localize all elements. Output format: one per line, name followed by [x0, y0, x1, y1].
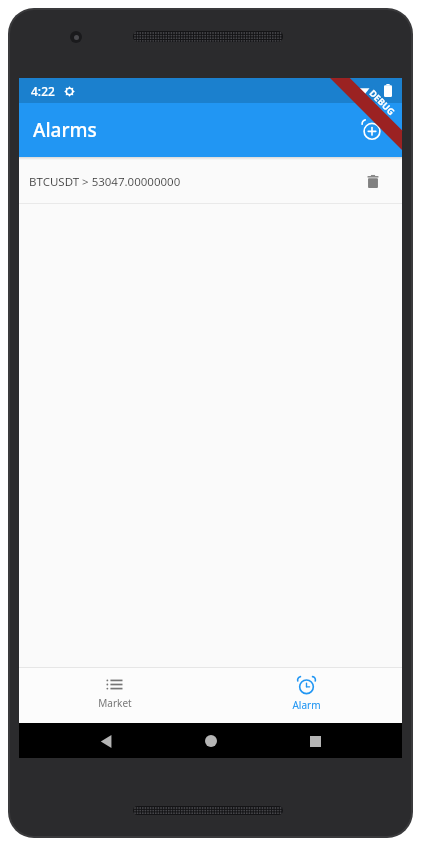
staticText: Alarms: [33, 117, 97, 143]
staticText: DEBUG: [367, 87, 398, 117]
staticText: 4:22: [31, 83, 55, 99]
button[interactable]: Alarm: [210, 668, 402, 723]
button[interactable]: Home: [194, 724, 228, 758]
button[interactable]: Recent apps: [298, 724, 332, 758]
staticText: BTCUSDT > 53047.00000000: [29, 174, 181, 190]
button[interactable]: BTCUSDT > 53047.00000000: [19, 160, 402, 203]
button[interactable]: Add alarm: [352, 110, 392, 150]
button[interactable]: Delete alarm: [358, 167, 388, 197]
button[interactable]: Back: [89, 724, 123, 758]
button[interactable]: Market: [19, 668, 210, 723]
staticText: Alarm: [292, 698, 321, 712]
staticText: Market: [98, 696, 132, 710]
